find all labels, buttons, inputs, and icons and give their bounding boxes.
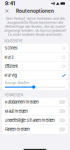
staticText: Routenoptionen xyxy=(16,8,54,14)
staticText: Schnell xyxy=(5,46,18,50)
button[interactable]: Kurz xyxy=(2,53,68,62)
staticText: Autobahnen meiden xyxy=(5,100,39,104)
staticText: Maut meiden xyxy=(5,109,28,114)
button[interactable]: Unbefestigte Straßen meiden xyxy=(2,116,68,125)
staticText: 9:41 xyxy=(5,1,15,6)
button[interactable]: Effizient xyxy=(2,62,68,71)
staticText: VERMEIDEN xyxy=(5,93,23,97)
button[interactable]: Kurvig xyxy=(2,71,68,80)
staticText: Kurz xyxy=(5,55,14,60)
button[interactable]: Schnell xyxy=(2,44,68,53)
staticText: Unbefestigte Straßen meiden xyxy=(5,118,55,123)
staticText: Kurvige Straßen xyxy=(5,81,30,85)
button[interactable]: Maut meiden xyxy=(2,107,68,116)
staticText: Dein Verlauf, deine Vorlieben und die au… xyxy=(4,16,66,37)
button[interactable]: Autobahnen meiden xyxy=(2,98,68,107)
button[interactable]: Fähren meiden xyxy=(2,125,68,134)
staticText: Effizient xyxy=(5,64,18,69)
button[interactable]: Schliessen xyxy=(3,7,10,14)
staticText: ROUTENTYP xyxy=(5,39,23,43)
staticText: Fähren meiden xyxy=(5,127,30,132)
staticText: Kurvig xyxy=(5,73,17,78)
